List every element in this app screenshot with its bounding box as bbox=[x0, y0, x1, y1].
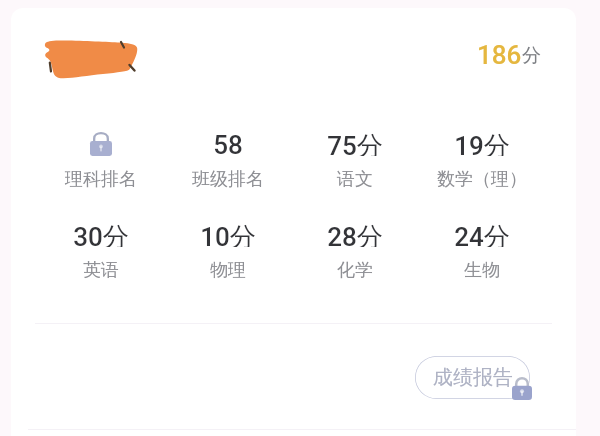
staticText: 10分 bbox=[200, 221, 256, 247]
staticText: 班级排名 bbox=[192, 168, 264, 191]
staticText: 理科排名 bbox=[65, 168, 137, 191]
staticText: 30分 bbox=[73, 221, 129, 247]
button[interactable]: 理科排名 bbox=[38, 130, 164, 191]
staticText: 成绩报告 bbox=[433, 365, 513, 390]
staticText: 生物 bbox=[464, 259, 500, 282]
staticText: 75分 bbox=[327, 130, 383, 156]
staticText: 24分 bbox=[454, 221, 510, 247]
staticText: 186 bbox=[477, 40, 522, 70]
staticText: 英语 bbox=[83, 259, 119, 282]
button[interactable]: 19分 bbox=[418, 130, 545, 191]
staticText: 分 bbox=[522, 44, 541, 68]
other: Locked bbox=[512, 376, 532, 400]
button[interactable]: 10分 bbox=[164, 221, 291, 282]
button[interactable]: 30分 bbox=[38, 221, 164, 282]
staticText: 物理 bbox=[210, 259, 246, 282]
staticText: 58 bbox=[213, 130, 243, 156]
button[interactable]: 28分 bbox=[291, 221, 418, 282]
button[interactable]: 成绩报告 bbox=[415, 356, 530, 399]
staticText: 28分 bbox=[327, 221, 383, 247]
button[interactable]: 58 bbox=[164, 130, 291, 191]
button[interactable]: 75分 bbox=[291, 130, 418, 191]
staticText: 化学 bbox=[337, 259, 373, 282]
button[interactable]: 24分 bbox=[418, 221, 545, 282]
staticText: 语文 bbox=[337, 168, 373, 191]
staticText: 数学（理） bbox=[437, 168, 527, 191]
staticText: 19分 bbox=[454, 130, 510, 156]
